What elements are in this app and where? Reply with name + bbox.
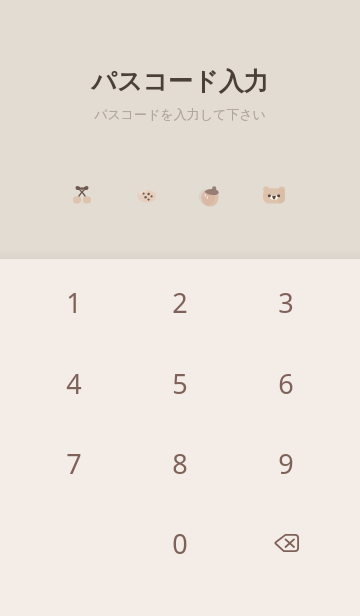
staticText: パスコードを入力して下さい [94, 106, 266, 122]
staticText: 3 [278, 284, 294, 321]
button[interactable]: 3 [234, 263, 338, 341]
staticText: 2 [172, 284, 188, 321]
staticText: パスコード入力 [91, 66, 269, 97]
button[interactable]: 5 [128, 344, 232, 422]
button[interactable]: 1 [22, 263, 126, 341]
button[interactable]: 6 [234, 344, 338, 422]
staticText: 5 [172, 365, 188, 402]
staticText: 7 [66, 445, 82, 482]
staticText: 6 [278, 365, 294, 402]
button[interactable]: Delete [234, 504, 338, 582]
button[interactable]: 9 [234, 424, 338, 502]
button[interactable]: 4 [22, 344, 126, 422]
button[interactable]: 2 [128, 263, 232, 341]
staticText: 0 [172, 525, 188, 562]
button[interactable]: 0 [128, 504, 232, 582]
staticText: 1 [66, 284, 82, 321]
staticText: 4 [66, 365, 82, 402]
button[interactable]: 7 [22, 424, 126, 502]
staticText: 8 [172, 445, 188, 482]
staticText: 9 [278, 445, 294, 482]
button[interactable]: 8 [128, 424, 232, 502]
